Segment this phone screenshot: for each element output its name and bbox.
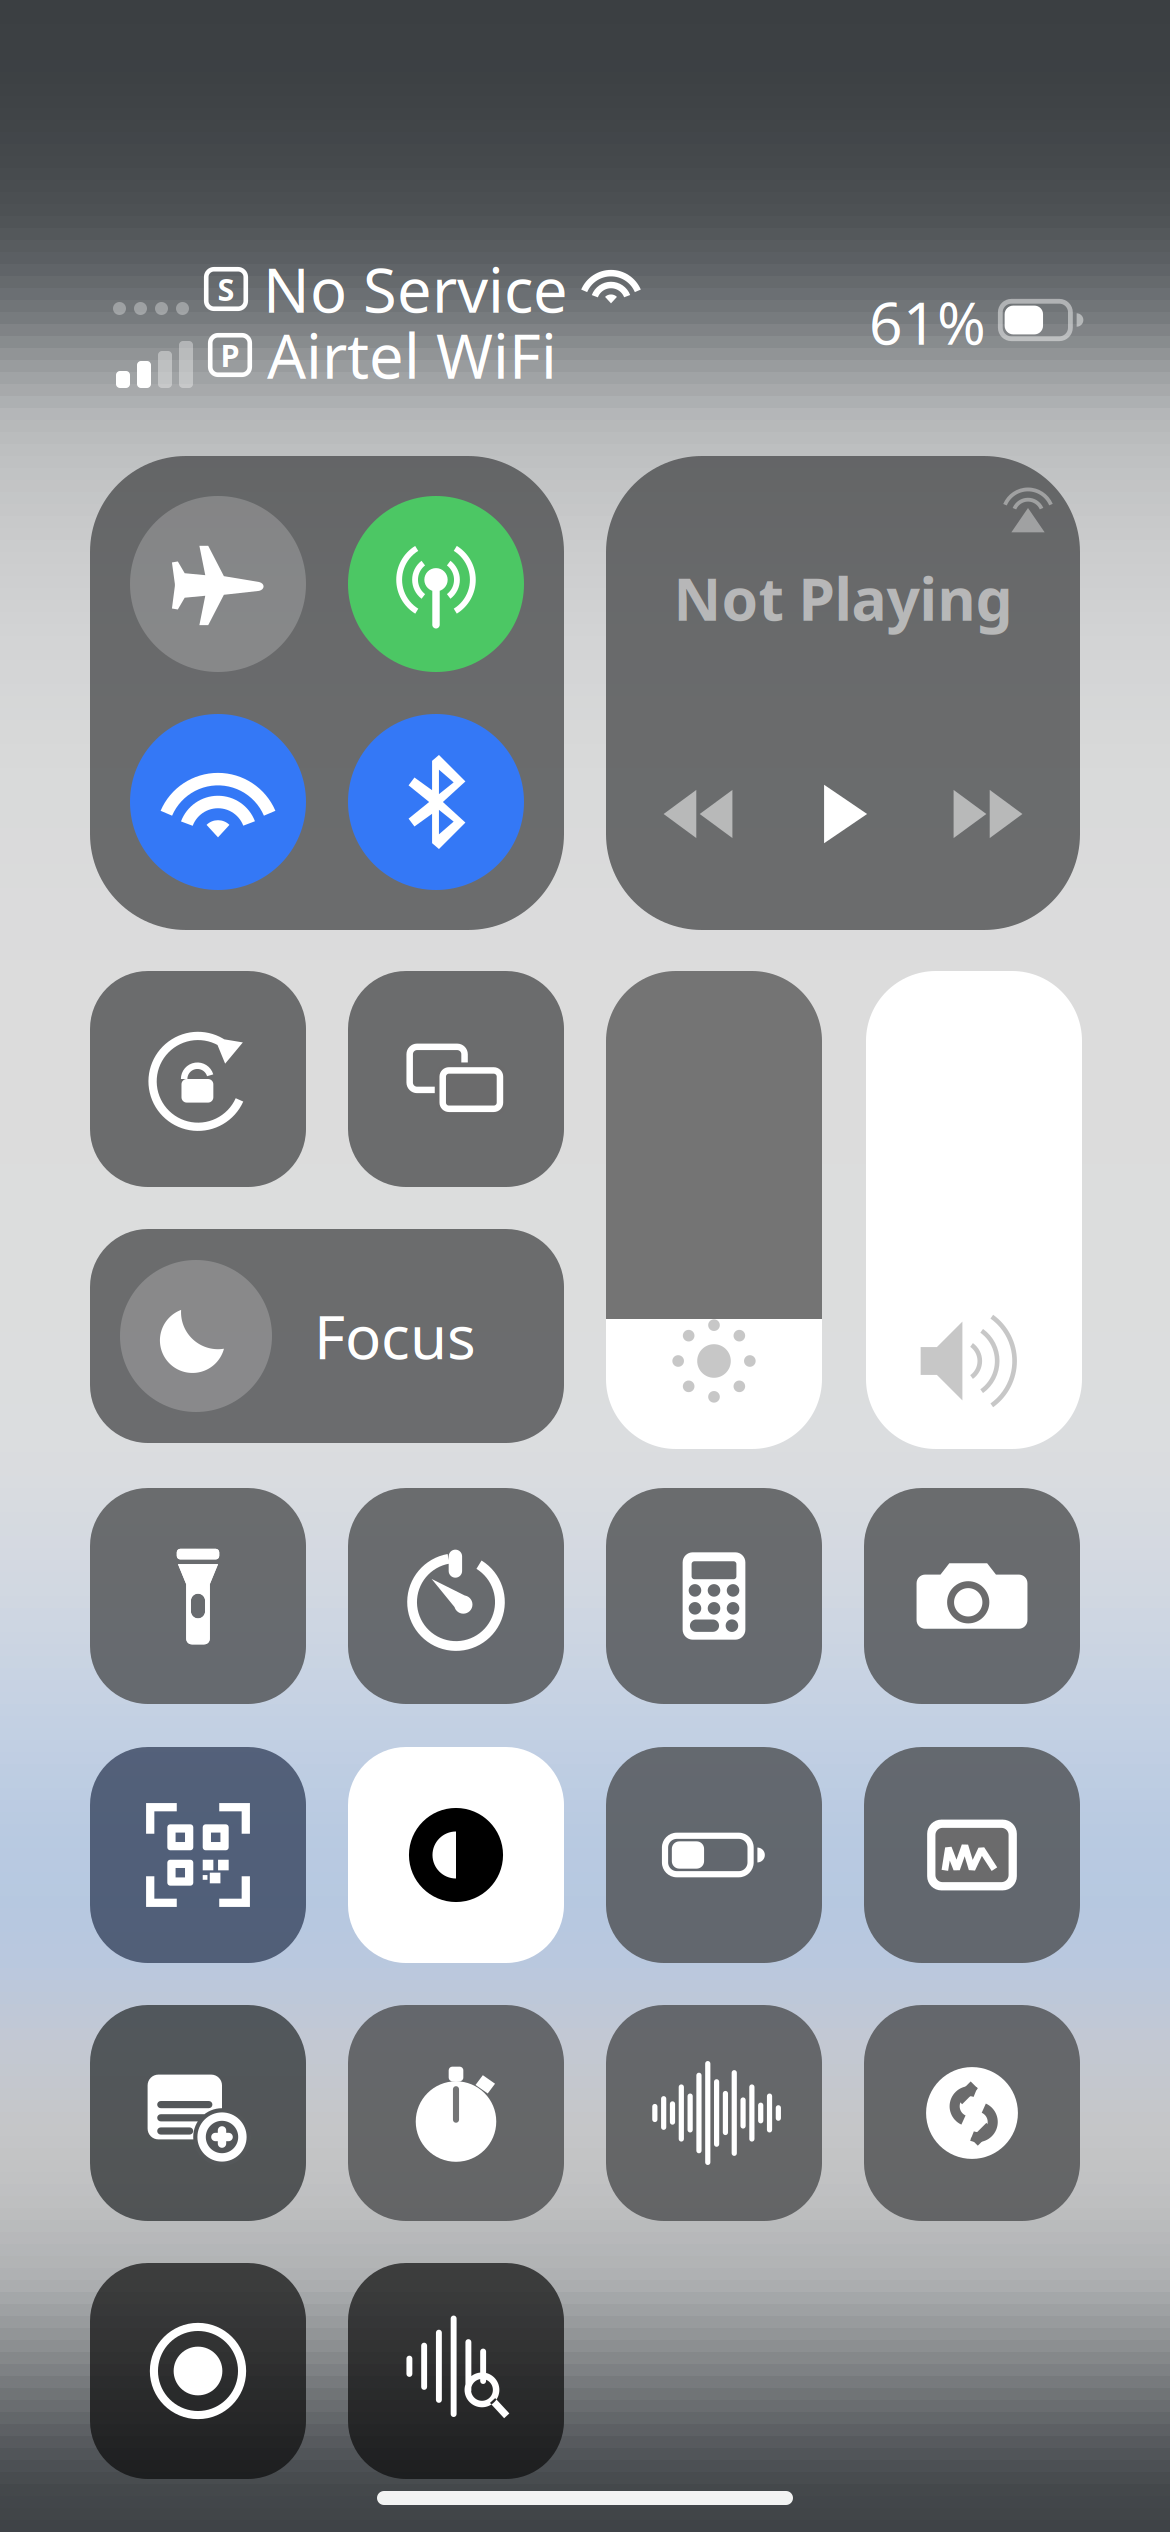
button[interactable]: Focus [90, 1229, 564, 1443]
button[interactable]: Flashlight [90, 1488, 306, 1704]
button[interactable]: Volume [866, 971, 1082, 1449]
button[interactable]: Sound Recognition [348, 2263, 564, 2479]
button[interactable]: Music Recognition [864, 1747, 1080, 1963]
button[interactable]: Previous [655, 771, 741, 857]
button[interactable]: Wi-Fi [130, 714, 306, 890]
staticText: Focus [314, 1295, 476, 1377]
button[interactable]: Shazam [864, 2005, 1080, 2221]
staticText: Not Playing [673, 558, 1012, 638]
staticText: No Service [263, 247, 568, 331]
staticText: P [220, 334, 239, 376]
button[interactable]: Airplane Mode [130, 496, 306, 672]
button[interactable]: Timer [348, 1488, 564, 1704]
button[interactable]: Quick Note [90, 2005, 306, 2221]
button[interactable]: Code Scanner [90, 1747, 306, 1963]
button[interactable]: Play [800, 771, 886, 857]
button[interactable]: Hearing [606, 2005, 822, 2221]
staticText: 61% [869, 282, 986, 362]
button[interactable]: Dark Mode [348, 1747, 564, 1963]
button[interactable]: Low Power Mode [606, 1747, 822, 1963]
button[interactable]: Cellular Data [348, 496, 524, 672]
button[interactable]: Screen Mirroring [348, 971, 564, 1187]
button[interactable]: Screen Recording [90, 2263, 306, 2479]
button[interactable]: Bluetooth [348, 714, 524, 890]
button[interactable]: Camera [864, 1488, 1080, 1704]
button[interactable]: Stopwatch [348, 2005, 564, 2221]
button[interactable]: Next [945, 771, 1031, 857]
button[interactable]: Calculator [606, 1488, 822, 1704]
staticText: S [217, 268, 234, 310]
staticText: Airtel WiFi [267, 313, 557, 397]
button[interactable]: Rotation Lock [90, 971, 306, 1187]
button[interactable]: Brightness [606, 971, 822, 1449]
